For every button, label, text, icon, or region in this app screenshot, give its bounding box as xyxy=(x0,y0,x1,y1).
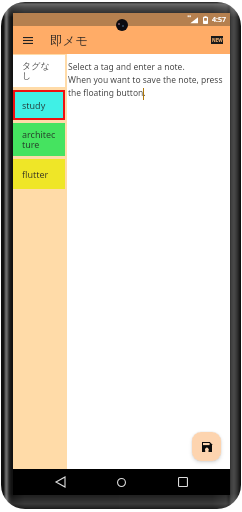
button[interactable]: New note xyxy=(211,36,223,44)
button[interactable]: architecture xyxy=(13,123,65,156)
button[interactable]: Back xyxy=(50,472,70,492)
staticText: タグなし xyxy=(22,60,56,82)
staticText: 4:57 xyxy=(212,15,226,25)
button[interactable]: Recent apps xyxy=(173,472,193,492)
staticText: NEW xyxy=(212,37,223,43)
button[interactable]: Save note xyxy=(192,432,221,461)
button[interactable]: Home xyxy=(111,472,131,492)
staticText: 即メモ xyxy=(50,33,89,49)
button[interactable]: study xyxy=(13,90,65,120)
button[interactable]: タグなし xyxy=(13,55,65,87)
button[interactable]: flutter xyxy=(13,159,65,189)
staticText: flutter xyxy=(22,168,49,180)
button[interactable]: Open navigation menu xyxy=(19,30,37,50)
staticText: architecture xyxy=(22,128,56,151)
staticText: Select a tag and enter a note. When you … xyxy=(68,61,226,99)
staticText: study xyxy=(22,99,46,111)
